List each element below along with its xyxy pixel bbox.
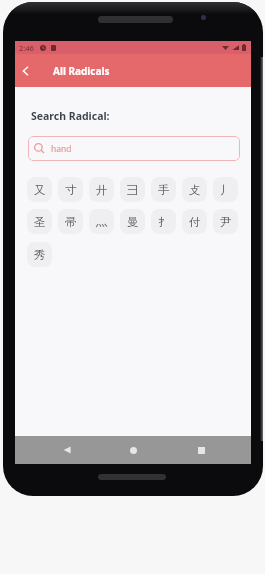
staticText: 扌	[158, 215, 170, 229]
button[interactable]: 付	[182, 209, 207, 234]
button[interactable]: 帚	[58, 209, 83, 234]
button[interactable]: Recent apps	[187, 436, 215, 464]
button[interactable]: 廾	[89, 177, 114, 202]
staticText: hand	[51, 143, 72, 155]
button[interactable]: 秀	[27, 242, 52, 267]
button[interactable]: Home	[119, 436, 147, 464]
staticText: 攴	[189, 183, 201, 197]
staticText: 帚	[65, 215, 77, 229]
button[interactable]: 灬	[89, 209, 114, 234]
button[interactable]: 曼	[120, 209, 145, 234]
staticText: 手	[158, 183, 170, 197]
staticText: 廾	[96, 183, 108, 197]
staticText: 曼	[127, 215, 139, 229]
staticText: 丿	[220, 183, 232, 197]
staticText: 又	[34, 183, 46, 197]
staticText: 秀	[34, 248, 46, 262]
staticText: All Radicals	[53, 64, 110, 78]
staticText: 灬	[96, 215, 108, 229]
button[interactable]: Back	[15, 60, 37, 82]
staticText: 彐	[127, 183, 139, 197]
button[interactable]: 彐	[120, 177, 145, 202]
button[interactable]: hand	[28, 136, 240, 161]
button[interactable]: 尹	[213, 209, 238, 234]
staticText: 圣	[34, 215, 46, 229]
button[interactable]: 丿	[213, 177, 238, 202]
button[interactable]: 圣	[27, 209, 52, 234]
staticText: Search Radical:	[31, 109, 110, 123]
staticText: 尹	[220, 215, 232, 229]
staticText: 寸	[65, 183, 77, 197]
staticText: 2:46	[19, 43, 34, 53]
staticText: 付	[189, 215, 201, 229]
button[interactable]: 寸	[58, 177, 83, 202]
button[interactable]: 手	[151, 177, 176, 202]
button[interactable]: 攴	[182, 177, 207, 202]
button[interactable]: 扌	[151, 209, 176, 234]
button[interactable]: Back	[53, 436, 81, 464]
button[interactable]: 又	[27, 177, 52, 202]
